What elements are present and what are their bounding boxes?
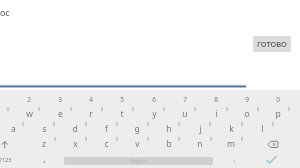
staticText: 5	[120, 95, 124, 104]
button[interactable]: o	[233, 105, 261, 123]
button[interactable]: s	[30, 120, 58, 138]
button[interactable]: ,	[30, 150, 58, 168]
staticText: o	[244, 108, 250, 120]
button[interactable]: ГОТОВО	[253, 36, 291, 52]
staticText: 2	[27, 95, 31, 104]
button[interactable]: ?123	[0, 151, 19, 168]
button[interactable]: y	[140, 105, 168, 123]
staticText: 4	[89, 95, 93, 104]
staticText: k	[229, 123, 234, 135]
button[interactable]: p	[264, 105, 292, 123]
staticText: f	[105, 123, 108, 135]
staticText: x	[73, 138, 78, 150]
staticText: w	[26, 108, 33, 120]
staticText: u	[182, 108, 188, 120]
button[interactable]: d	[61, 120, 89, 138]
staticText: 9	[245, 95, 249, 104]
button[interactable]: English	[64, 157, 213, 165]
staticText: ГОТОВО	[257, 39, 287, 49]
staticText: t	[120, 108, 124, 120]
staticText: v	[135, 138, 140, 150]
button[interactable]: z	[30, 135, 58, 153]
button[interactable]: v	[123, 135, 151, 153]
staticText: b	[166, 138, 172, 150]
button[interactable]: l	[248, 120, 276, 138]
button[interactable]: .	[220, 150, 248, 168]
button[interactable]: a	[0, 120, 27, 138]
staticText: j	[199, 123, 202, 135]
button[interactable]: k	[217, 120, 245, 138]
button[interactable]: x	[61, 135, 89, 153]
staticText: 3	[58, 95, 62, 104]
staticText: p	[275, 108, 281, 120]
button[interactable]: Backspace	[264, 138, 286, 152]
button[interactable]: b	[155, 135, 183, 153]
staticText: 7	[183, 95, 187, 104]
button[interactable]: c	[92, 135, 120, 153]
staticText: l	[261, 123, 264, 135]
staticText: ,	[43, 153, 46, 165]
button[interactable]: Enter	[260, 153, 282, 167]
staticText: 6	[152, 95, 156, 104]
staticText: r	[89, 108, 93, 120]
staticText: h	[166, 123, 172, 135]
staticText: n	[197, 138, 203, 150]
button[interactable]: f	[92, 120, 120, 138]
button[interactable]: w	[15, 105, 43, 123]
button[interactable]: q	[0, 105, 12, 123]
button[interactable]: m	[217, 135, 245, 153]
staticText: y	[152, 108, 157, 120]
staticText: s	[42, 123, 47, 135]
staticText: i	[215, 108, 218, 120]
button[interactable]: j	[186, 120, 214, 138]
staticText: 8	[214, 95, 218, 104]
button[interactable]: r	[77, 105, 105, 123]
staticText: z	[42, 138, 46, 150]
button[interactable]: Shift	[0, 136, 22, 152]
button[interactable]: h	[155, 120, 183, 138]
staticText: e	[58, 108, 63, 120]
staticText: English	[130, 158, 148, 165]
staticText: c	[104, 138, 109, 150]
staticText: d	[72, 123, 78, 135]
staticText: m	[227, 138, 235, 150]
button[interactable]: n	[186, 135, 214, 153]
staticText: ?123	[0, 156, 12, 164]
staticText: 0	[276, 95, 280, 104]
staticText: g	[134, 123, 140, 135]
button[interactable]: e	[46, 105, 74, 123]
button[interactable]: u	[171, 105, 199, 123]
staticText: ос	[0, 6, 10, 18]
button[interactable]: i	[202, 105, 230, 123]
button[interactable]: t	[108, 105, 136, 123]
staticText: a	[11, 123, 16, 135]
button[interactable]: g	[123, 120, 151, 138]
staticText: .	[233, 153, 236, 165]
